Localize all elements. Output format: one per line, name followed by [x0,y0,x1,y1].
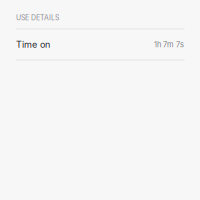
button[interactable]: Time on [0,29,200,59]
staticText: USE DETAILS [16,14,59,22]
staticText: 1h 7m 7s [154,40,184,49]
staticText: Time on [16,39,50,50]
